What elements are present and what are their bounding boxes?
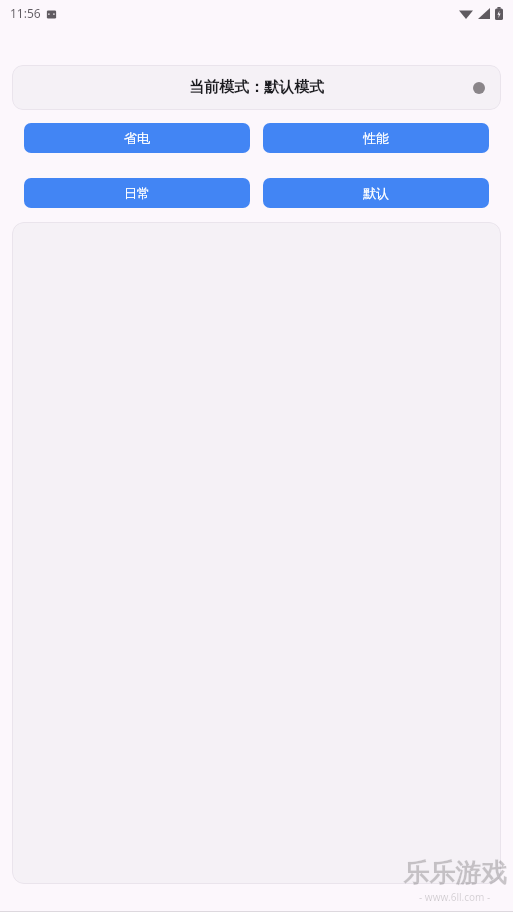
button[interactable]: 日常	[24, 178, 250, 208]
staticText: 11:56	[10, 5, 41, 21]
staticText: 乐乐游戏	[403, 857, 507, 890]
button[interactable]: 性能	[263, 123, 489, 153]
staticText: 当前模式：默认模式	[189, 78, 324, 97]
staticText: 省电	[124, 130, 150, 146]
staticText: 性能	[363, 130, 389, 146]
staticText: - www.6ll.com -	[419, 890, 491, 904]
staticText: 日常	[124, 185, 150, 201]
staticText: 默认	[363, 185, 389, 201]
button[interactable]: 当前模式：默认模式	[12, 65, 501, 110]
button[interactable]: 省电	[24, 123, 250, 153]
button[interactable]: 默认	[263, 178, 489, 208]
